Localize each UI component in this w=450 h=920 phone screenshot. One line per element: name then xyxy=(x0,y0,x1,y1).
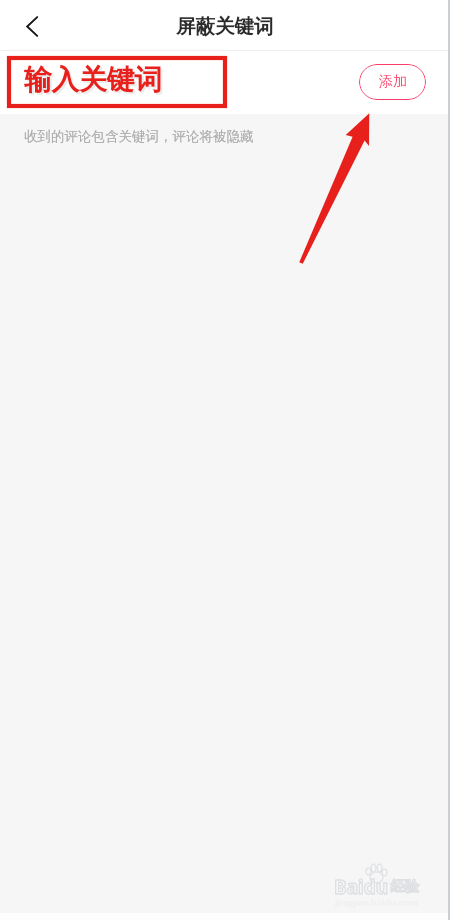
staticText: 添加 xyxy=(379,73,407,91)
button[interactable]: 输入关键词 xyxy=(24,62,162,97)
button[interactable]: 添加 xyxy=(359,64,426,100)
staticText: Baidu xyxy=(334,874,389,900)
staticText: 收到的评论包含关键词，评论将被隐藏 xyxy=(24,128,254,145)
button[interactable]: Back xyxy=(0,0,62,50)
staticText: 输入关键词 xyxy=(24,62,162,97)
staticText: 屏蔽关键词 xyxy=(176,14,274,39)
staticText: 输入关键词 xyxy=(26,64,164,99)
staticText: 经验 xyxy=(391,878,419,896)
